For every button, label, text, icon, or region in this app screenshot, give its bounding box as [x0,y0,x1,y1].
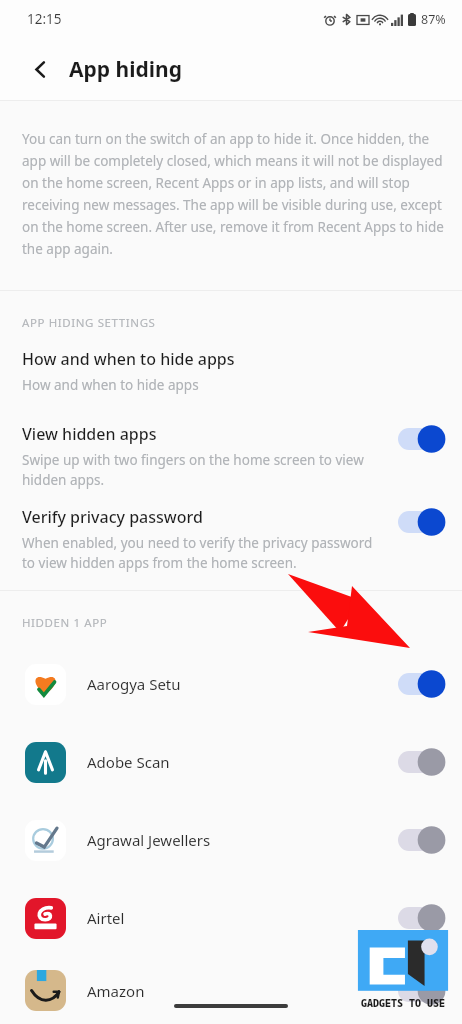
staticText: HIDDEN 1 APP [22,615,108,631]
staticText: Adobe Scan [87,752,170,772]
staticText: View hidden apps [22,423,157,445]
button[interactable]: Agrawal Jewellers [0,801,462,879]
button[interactable]: Adobe Scan [0,723,462,801]
button[interactable]: Airtel [0,879,462,957]
staticText: Airtel [87,908,125,928]
button[interactable]: Toggle off [398,907,444,929]
staticText: When enabled, you need to verify the pri… [22,534,373,572]
button[interactable]: Aarogya Setu [0,645,462,723]
staticText: APP HIDING SETTINGS [22,315,156,331]
staticText: Aarogya Setu [87,674,181,694]
staticText: Agrawal Jewellers [87,830,211,850]
staticText: How and when to hide apps [22,348,235,370]
staticText: Swipe up with two fingers on the home sc… [22,451,364,489]
staticText: Amazon [87,981,145,1001]
button[interactable]: Amazon [0,957,462,1024]
button[interactable]: View hidden apps [0,408,462,491]
staticText: Verify privacy password [22,506,203,528]
staticText: GADGETS TO USE [361,996,445,1010]
staticText: App hiding [69,55,182,84]
button[interactable]: Toggle off [398,829,444,851]
button[interactable]: Toggle off [398,751,444,773]
button[interactable]: Toggle on [398,428,444,450]
button[interactable]: Toggle on [398,673,444,695]
staticText: 12:15 [27,10,62,28]
button[interactable]: Back [22,51,58,87]
button[interactable]: Verify privacy password [0,491,462,574]
staticText: How and when to hide apps [22,376,199,394]
staticText: You can turn on the switch of an app to … [22,130,446,258]
button[interactable]: Toggle on [398,511,444,533]
staticText: 87% [421,11,446,28]
button[interactable]: Toggle off [398,980,444,1002]
button[interactable]: How and when to hide apps [0,335,462,408]
